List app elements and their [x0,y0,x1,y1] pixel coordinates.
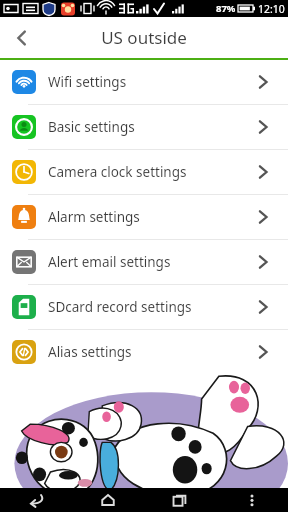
button[interactable]: More options [216,488,288,512]
staticText: Basic settings [48,118,135,136]
staticText: Alarm settings [48,208,140,226]
staticText: 87% [216,2,236,15]
button[interactable]: Recent apps [144,488,216,512]
button[interactable]: SDcard record settings [0,285,288,329]
staticText: Alert email settings [48,253,171,271]
staticText: Wifi settings [48,73,127,91]
button[interactable]: Alarm settings [0,195,288,239]
button[interactable]: Alias settings [0,330,288,374]
staticText: 12:10 [258,2,285,16]
staticText: SDcard record settings [48,298,192,316]
staticText: Camera clock settings [48,163,187,181]
staticText: Alias settings [48,343,132,361]
button[interactable]: Wifi settings [0,60,288,104]
button[interactable]: Camera clock settings [0,150,288,194]
button[interactable]: Alert email settings [0,240,288,284]
button[interactable]: Home [72,488,144,512]
staticText: US outside [101,26,187,49]
button[interactable]: Basic settings [0,105,288,149]
button[interactable]: Back [0,488,72,512]
button[interactable]: Back [0,17,44,58]
